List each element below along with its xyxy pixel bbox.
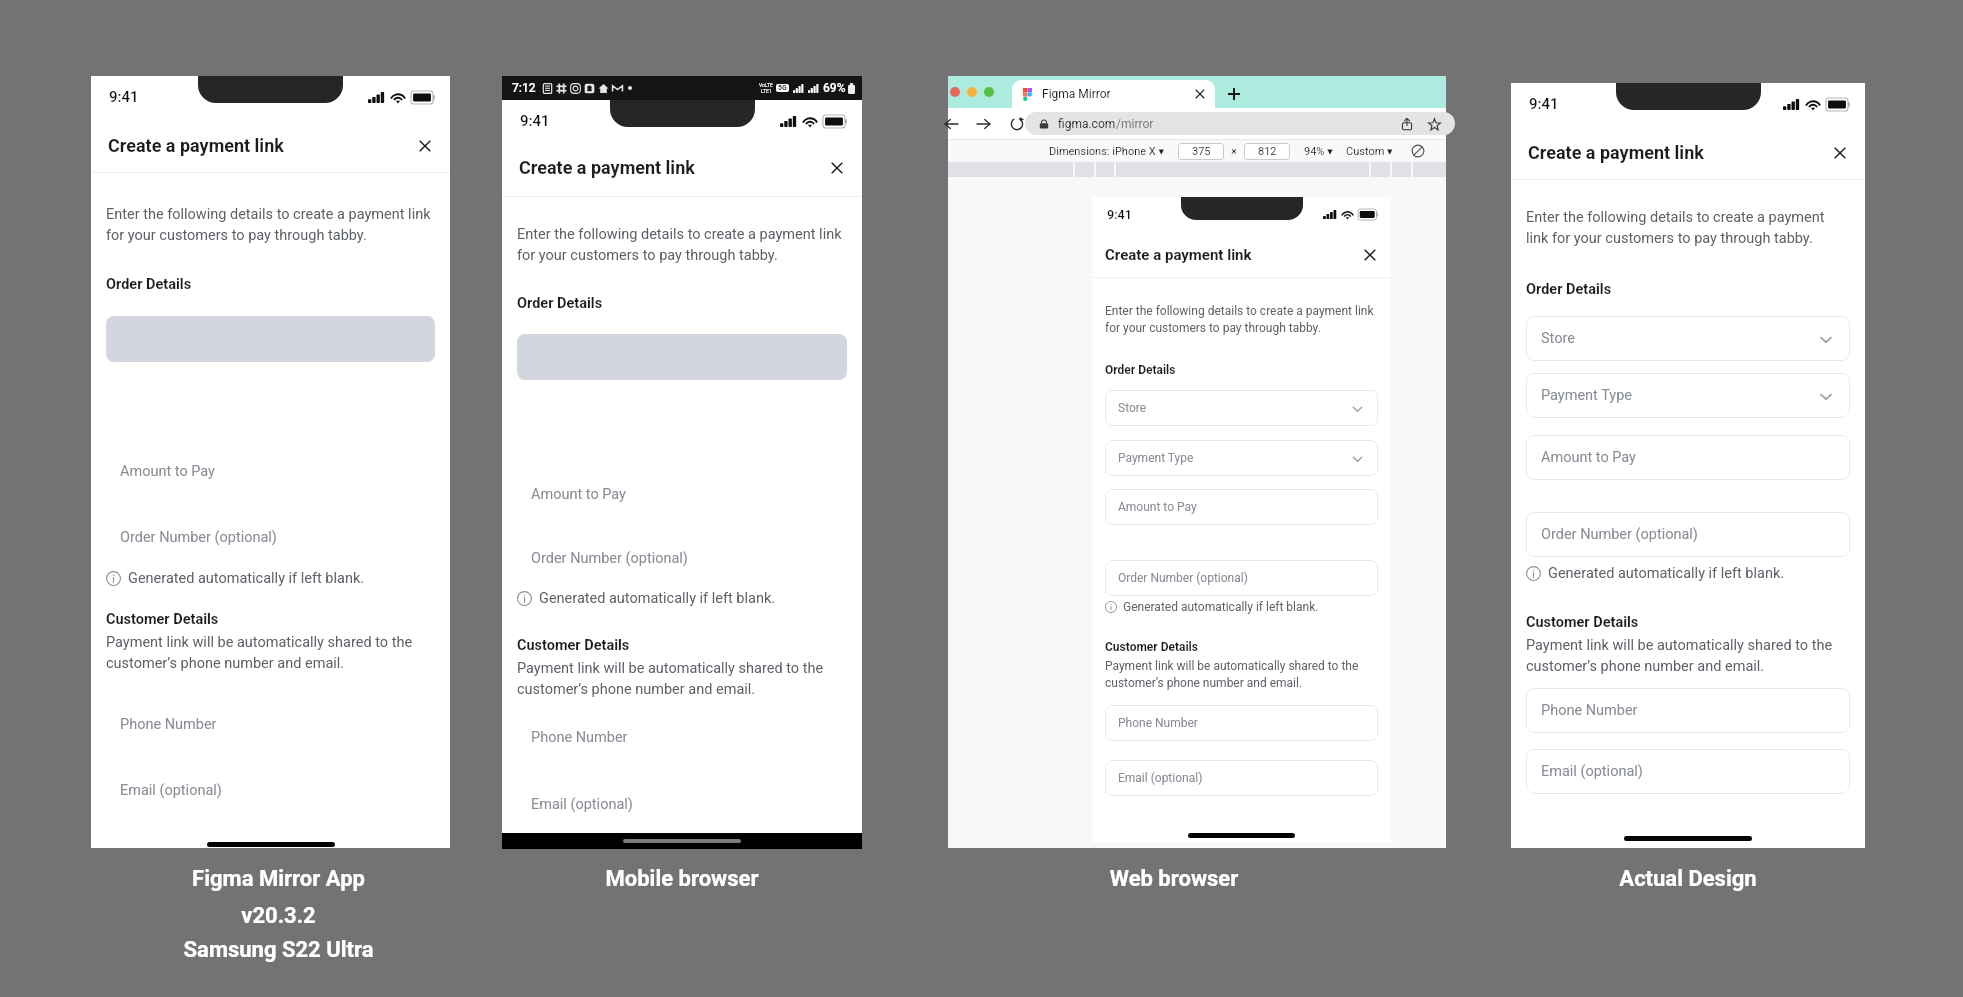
staticText: Enter the following details to create a …: [517, 226, 847, 264]
button[interactable]: Payment Type: [1105, 440, 1378, 476]
button[interactable]: 812: [1244, 143, 1290, 160]
button[interactable]: Custom ▾: [1346, 145, 1393, 158]
button[interactable]: Rotate: [1409, 142, 1427, 160]
staticText: Payment link will be automatically share…: [1526, 637, 1850, 675]
staticText: Generated automatically if left blank.: [1123, 600, 1319, 614]
staticText: 94% ▾: [1304, 145, 1333, 158]
button[interactable]: Store: [1526, 316, 1850, 361]
staticText: Web browser: [925, 866, 1423, 892]
staticText: Customer Details: [1105, 640, 1198, 654]
staticText: Payment link will be automatically share…: [517, 660, 847, 698]
button[interactable]: Amount to Pay: [106, 460, 435, 482]
staticText: 5G: [778, 84, 787, 92]
button[interactable]: Amount to Pay: [1526, 435, 1850, 480]
button[interactable]: Email (optional): [517, 793, 847, 815]
button[interactable]: Phone Number: [1105, 705, 1378, 741]
button[interactable]: Phone Number: [106, 713, 435, 735]
staticText: 7:12: [512, 81, 536, 95]
staticText: Phone Number: [1541, 702, 1638, 719]
staticText: Figma Mirror: [1042, 87, 1111, 101]
button[interactable]: Close: [1831, 144, 1848, 161]
staticText: Amount to Pay: [531, 486, 626, 503]
staticText: Payment link will be automatically share…: [1105, 659, 1378, 690]
staticText: figma.com: [1058, 117, 1116, 131]
staticText: ×: [1231, 145, 1237, 158]
staticText: Order Number (optional): [1541, 526, 1698, 543]
button[interactable]: Order Number (optional): [517, 547, 847, 569]
button[interactable]: Order Number (optional): [1105, 560, 1378, 596]
button[interactable]: Email (optional): [106, 779, 435, 801]
button[interactable]: Share: [1399, 116, 1415, 132]
staticText: 9:41: [1107, 207, 1132, 222]
button[interactable]: Phone Number: [1526, 688, 1850, 733]
staticText: Generated automatically if left blank.: [128, 570, 365, 587]
button[interactable]: Back: [940, 113, 962, 135]
button[interactable]: Order Number (optional): [106, 526, 435, 548]
staticText: Email (optional): [531, 796, 633, 813]
staticText: Store: [1118, 401, 1147, 415]
staticText: Enter the following details to create a …: [106, 206, 435, 244]
button[interactable]: Forward: [973, 113, 995, 135]
staticText: Order Details: [517, 295, 603, 312]
staticText: LTE1: [761, 88, 772, 94]
staticText: 69%: [823, 81, 846, 95]
button[interactable]: Dimensions: iPhone X ▾: [1049, 145, 1164, 158]
staticText: Generated automatically if left blank.: [1548, 565, 1785, 582]
staticText: Order Number (optional): [120, 529, 277, 546]
button[interactable]: Payment Type: [1526, 373, 1850, 418]
staticText: Mobile browser: [502, 866, 862, 892]
staticText: Email (optional): [1541, 763, 1643, 780]
staticText: Create a payment link: [1528, 142, 1704, 163]
button[interactable]: Phone Number: [517, 726, 847, 748]
staticText: Email (optional): [1118, 771, 1203, 785]
button[interactable]: Figma Mirror: [1012, 80, 1215, 108]
staticText: Customer Details: [517, 637, 630, 654]
button[interactable]: Order Number (optional): [1526, 512, 1850, 557]
staticText: Dimensions: iPhone X ▾: [1049, 145, 1164, 158]
button[interactable]: Reload: [1006, 113, 1028, 135]
staticText: Customer Details: [106, 611, 219, 628]
staticText: 9:41: [1529, 95, 1559, 113]
staticText: Figma Mirror App: [99, 866, 458, 892]
staticText: Amount to Pay: [1541, 449, 1636, 466]
staticText: Phone Number: [1118, 716, 1198, 730]
staticText: Order Details: [1526, 281, 1612, 298]
staticText: Samsung S22 Ultra: [99, 937, 458, 963]
staticText: Create a payment link: [519, 157, 695, 178]
staticText: Email (optional): [120, 782, 222, 799]
staticText: Order Details: [106, 276, 192, 293]
button[interactable]: Close: [828, 159, 845, 176]
staticText: Create a payment link: [1105, 246, 1252, 264]
button[interactable]: Amount to Pay: [517, 483, 847, 505]
button[interactable]: Amount to Pay: [1105, 489, 1378, 525]
staticText: Amount to Pay: [120, 463, 215, 480]
staticText: Phone Number: [531, 729, 628, 746]
staticText: Store: [1541, 330, 1575, 347]
button[interactable]: Email (optional): [1526, 749, 1850, 794]
staticText: Enter the following details to create a …: [1526, 209, 1850, 247]
button[interactable]: Close: [1361, 246, 1378, 263]
staticText: Payment link will be automatically share…: [106, 634, 435, 672]
button[interactable]: Close: [416, 137, 433, 154]
staticText: 812: [1258, 145, 1277, 158]
staticText: Amount to Pay: [1118, 500, 1197, 514]
button[interactable]: figma.com: [1025, 112, 1455, 135]
staticText: Order Details: [1105, 363, 1176, 377]
button[interactable]: Email (optional): [1105, 760, 1378, 796]
staticText: Payment Type: [1541, 387, 1633, 404]
button[interactable]: 375: [1178, 143, 1224, 160]
button[interactable]: Bookmark: [1426, 116, 1442, 132]
staticText: Custom ▾: [1346, 145, 1393, 158]
staticText: Payment Type: [1118, 451, 1194, 465]
button[interactable]: Store: [1105, 390, 1378, 426]
button[interactable]: 94% ▾: [1304, 145, 1333, 158]
staticText: Enter the following details to create a …: [1105, 304, 1378, 335]
staticText: Phone Number: [120, 716, 217, 733]
button[interactable]: New tab: [1225, 85, 1243, 103]
staticText: 9:41: [520, 112, 550, 130]
button[interactable]: Close tab: [1193, 87, 1207, 101]
staticText: 9:41: [109, 88, 139, 106]
staticText: v20.3.2: [99, 903, 458, 929]
